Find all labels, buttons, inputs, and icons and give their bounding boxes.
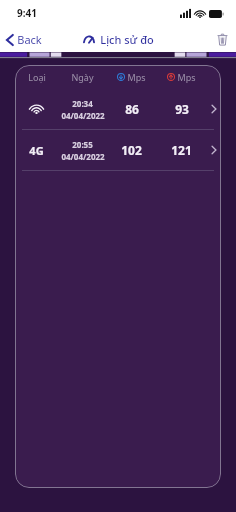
staticText: Loại <box>28 71 46 83</box>
staticText: Ngày <box>71 71 94 83</box>
button[interactable]: Delete history <box>209 30 236 49</box>
button[interactable]: 4G <box>15 130 221 170</box>
staticText: 102 <box>121 142 142 158</box>
staticText: 93 <box>175 101 189 117</box>
staticText: 86 <box>125 101 139 117</box>
staticText: Mps <box>127 71 146 83</box>
staticText: Mps <box>177 71 196 83</box>
staticText: 20:55 <box>72 139 93 150</box>
staticText: 9:41 <box>17 6 37 20</box>
staticText: Lịch sử đo <box>100 32 154 47</box>
button[interactable]: 20:34 <box>15 89 221 129</box>
staticText: Back <box>17 32 42 47</box>
staticText: 04/04/2022 <box>61 151 105 162</box>
button[interactable]: Back <box>0 29 48 50</box>
staticText: 04/04/2022 <box>61 110 105 121</box>
staticText: 4G <box>29 143 44 158</box>
staticText: 121 <box>171 142 192 158</box>
staticText: 20:34 <box>72 98 93 109</box>
